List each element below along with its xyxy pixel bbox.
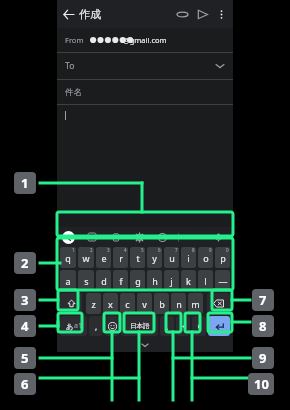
staticText: From [65, 35, 84, 45]
staticText: c [125, 298, 130, 310]
staticText: u [169, 252, 175, 264]
button[interactable]: Enter [208, 316, 230, 336]
button[interactable]: a [60, 270, 76, 291]
staticText: j [170, 275, 173, 287]
button[interactable]: o [198, 247, 213, 268]
button[interactable]: y [147, 247, 162, 268]
staticText: 5 [21, 349, 29, 367]
staticText: 日本語 [130, 322, 150, 330]
button[interactable]: j [164, 270, 179, 291]
button[interactable]: Back [57, 3, 79, 25]
staticText: l [204, 275, 207, 287]
staticText: 6 [21, 375, 29, 393]
staticText: r [119, 252, 123, 264]
staticText: g [135, 275, 141, 287]
button[interactable]: f [113, 270, 128, 291]
staticText: To [65, 60, 75, 72]
button[interactable]: x [103, 293, 118, 314]
button[interactable]: Stickers [85, 230, 99, 244]
button[interactable]: Backspace [207, 293, 230, 314]
staticText: h [152, 275, 158, 287]
button[interactable]: h [147, 270, 162, 291]
button[interactable]: u [164, 247, 179, 268]
button[interactable]: . [160, 316, 174, 336]
button[interactable]: Collapse toolbar [62, 231, 75, 244]
button[interactable]: z [86, 293, 101, 314]
button[interactable]: p [215, 247, 230, 268]
staticText: v [142, 298, 147, 310]
button[interactable]: — [215, 270, 230, 291]
button[interactable]: n [171, 293, 186, 314]
button[interactable]: b [154, 293, 169, 314]
button[interactable]: To [57, 53, 233, 79]
button[interactable]: , [89, 316, 103, 336]
button[interactable]: More options [212, 5, 230, 23]
staticText: — [218, 275, 228, 287]
button[interactable]: m [188, 293, 203, 314]
staticText: 1 [72, 247, 75, 253]
staticText: 作成 [79, 7, 101, 21]
staticText: t [136, 252, 140, 264]
button[interactable]: v [137, 293, 152, 314]
button[interactable]: From [57, 28, 233, 52]
button[interactable]: s [78, 270, 94, 291]
button[interactable]: k [181, 270, 196, 291]
staticText: m [191, 298, 200, 310]
staticText: 6 [158, 247, 161, 253]
button[interactable]: Voice input [211, 230, 225, 244]
staticText: 9 [209, 247, 212, 253]
button[interactable]: d [96, 270, 111, 291]
button[interactable]: Settings [132, 230, 146, 244]
button[interactable]: Attach [172, 4, 192, 24]
button[interactable]: More [188, 230, 202, 244]
staticText: 件名 [65, 87, 82, 98]
staticText: a [65, 275, 71, 287]
staticText: 10 [254, 375, 269, 393]
button[interactable]: i [181, 247, 196, 268]
staticText: q [65, 252, 71, 264]
button[interactable]: q [60, 247, 76, 268]
staticText: z [91, 298, 96, 310]
staticText: 4 [21, 317, 29, 335]
staticText: y [152, 252, 157, 264]
staticText: 2 [90, 247, 93, 253]
staticText: k [186, 275, 191, 287]
staticText: . [166, 321, 169, 332]
staticText: 2 [21, 254, 29, 272]
staticText: 3 [21, 291, 29, 309]
staticText: s [84, 275, 89, 287]
button[interactable] [57, 105, 233, 205]
button[interactable]: c [120, 293, 135, 314]
button[interactable]: Shift [60, 293, 82, 314]
staticText: w [82, 252, 90, 264]
button[interactable]: あ [60, 316, 87, 336]
staticText: 7 [175, 247, 178, 253]
staticText: , [95, 321, 98, 332]
button[interactable]: l [198, 270, 213, 291]
staticText: a1 [74, 321, 82, 331]
button[interactable]: Theme [155, 230, 169, 244]
button[interactable]: Cursor left [176, 316, 190, 336]
button[interactable]: r [113, 247, 128, 268]
button[interactable]: Hide keyboard [138, 338, 152, 352]
staticText: n [176, 298, 182, 310]
staticText: i [187, 252, 190, 264]
staticText: d [101, 275, 107, 287]
button[interactable]: w [78, 247, 94, 268]
staticText: o [203, 252, 209, 264]
staticText: 5 [141, 247, 144, 253]
staticText: x [108, 298, 113, 310]
button[interactable]: Clipboard [109, 230, 123, 244]
staticText: 8 [192, 247, 195, 253]
button[interactable]: e [96, 247, 111, 268]
button[interactable]: 日本語 [121, 316, 158, 336]
button[interactable]: t [130, 247, 145, 268]
button[interactable]: g [130, 270, 145, 291]
button[interactable]: Emoji [105, 316, 119, 336]
button[interactable]: 件名 [57, 80, 233, 104]
staticText: 3 [107, 247, 110, 253]
button[interactable]: Cursor right [192, 316, 206, 336]
staticText: 9 [259, 349, 267, 367]
button[interactable]: Send [192, 4, 212, 24]
staticText: e [101, 252, 107, 264]
